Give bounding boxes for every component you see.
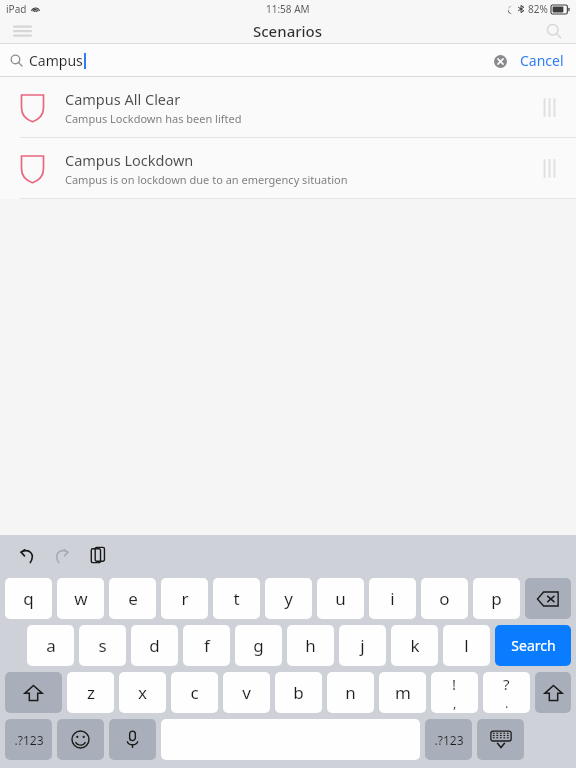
button[interactable]: h [287, 625, 334, 666]
staticText: Campus is on lockdown due to an emergenc… [65, 172, 348, 187]
button[interactable]: i [369, 578, 416, 619]
button[interactable]: g [235, 625, 282, 666]
button[interactable]: Hide keyboard [477, 719, 524, 760]
staticText: iPad [6, 2, 27, 16]
staticText: i [390, 587, 395, 610]
staticText: z [87, 681, 95, 704]
staticText: o [439, 587, 450, 610]
staticText: h [305, 634, 316, 657]
staticText: y [284, 587, 293, 610]
button[interactable]: Campus All Clear [0, 77, 576, 138]
staticText: Scenarios [253, 21, 323, 41]
button[interactable]: Paste [80, 537, 116, 573]
button[interactable]: Clear text [488, 49, 512, 73]
staticText: 82% [528, 2, 548, 16]
staticText: v [242, 681, 251, 704]
staticText: s [98, 634, 107, 657]
button[interactable]: w [57, 578, 104, 619]
button[interactable]: l [443, 625, 490, 666]
button[interactable]: a [27, 625, 74, 666]
staticText: .?123 [434, 732, 464, 748]
button[interactable]: k [391, 625, 438, 666]
staticText: l [464, 634, 469, 657]
button[interactable]: Reorder [532, 90, 566, 124]
button[interactable]: q [5, 578, 52, 619]
staticText: e [128, 587, 138, 610]
staticText: Campus All Clear [65, 89, 181, 109]
staticText: c [190, 681, 199, 704]
staticText: Campus Lockdown has been lifted [65, 111, 242, 126]
button[interactable]: Shift [5, 672, 62, 713]
button[interactable]: Menu [0, 18, 44, 44]
staticText: k [410, 634, 420, 657]
button[interactable]: t [213, 578, 260, 619]
button[interactable]: o [421, 578, 468, 619]
staticText: b [293, 681, 304, 704]
button[interactable]: v [223, 672, 270, 713]
staticText: t [233, 587, 240, 610]
staticText: Cancel [520, 51, 564, 70]
button[interactable]: Redo [44, 537, 80, 573]
staticText: g [253, 634, 264, 657]
button[interactable]: f [183, 625, 230, 666]
button[interactable]: c [171, 672, 218, 713]
staticText: m [395, 681, 411, 704]
staticText: r [181, 587, 189, 610]
staticText: p [491, 587, 502, 610]
staticText: j [360, 634, 365, 657]
button[interactable]: Shift [535, 672, 571, 713]
staticText: u [335, 587, 346, 610]
button[interactable]: m [379, 672, 426, 713]
button[interactable]: ? [483, 672, 530, 713]
button[interactable]: z [67, 672, 114, 713]
button[interactable]: Dictation [109, 719, 156, 760]
staticText: d [149, 634, 160, 657]
button[interactable]: y [265, 578, 312, 619]
staticText: n [345, 681, 356, 704]
button[interactable]: Campus Lockdown [0, 138, 576, 199]
staticText: 11:58 AM [266, 2, 310, 16]
button[interactable]: d [131, 625, 178, 666]
button[interactable]: u [317, 578, 364, 619]
button[interactable]: p [473, 578, 520, 619]
button[interactable]: b [275, 672, 322, 713]
button[interactable]: j [339, 625, 386, 666]
staticText: Campus [29, 51, 83, 70]
staticText: x [138, 681, 147, 704]
button[interactable]: Search [495, 625, 571, 666]
button[interactable]: .?123 [5, 719, 52, 760]
staticText: . [505, 694, 509, 712]
button[interactable]: n [327, 672, 374, 713]
staticText: , [453, 694, 457, 712]
staticText: f [204, 634, 210, 657]
button[interactable]: x [119, 672, 166, 713]
button[interactable]: Emoji [57, 719, 104, 760]
staticText: .?123 [14, 732, 44, 748]
button[interactable]: Search [532, 18, 576, 44]
staticText: a [46, 634, 56, 657]
button[interactable]: Reorder [532, 151, 566, 185]
button[interactable]: ! [431, 672, 478, 713]
staticText: ? [503, 674, 510, 694]
button[interactable]: e [109, 578, 156, 619]
button[interactable]: s [79, 625, 126, 666]
button[interactable]: Backspace [525, 578, 571, 619]
staticText: q [23, 587, 34, 610]
staticText: Search [511, 636, 556, 655]
staticText: Campus Lockdown [65, 150, 194, 170]
staticText: w [74, 587, 88, 610]
button[interactable]: Cancel [516, 47, 568, 74]
button[interactable]: r [161, 578, 208, 619]
button[interactable]: .?123 [425, 719, 472, 760]
staticText: ! [452, 674, 457, 694]
button[interactable]: Undo [8, 537, 44, 573]
